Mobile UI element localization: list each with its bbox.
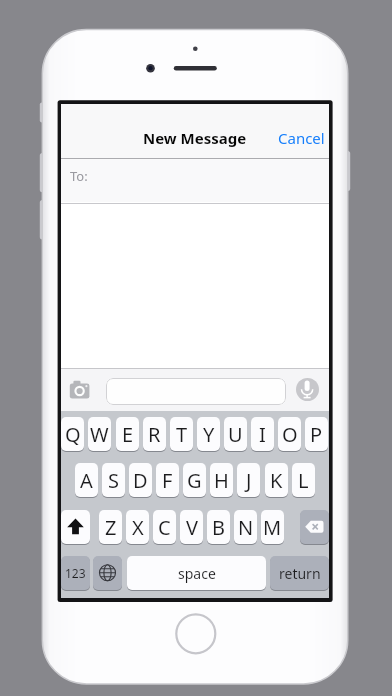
button[interactable]: L [292, 463, 315, 497]
button[interactable]: A [75, 463, 98, 497]
button[interactable]: R [143, 417, 166, 451]
button[interactable]: N [234, 510, 257, 544]
button[interactable]: M [261, 510, 284, 544]
button[interactable]: E [116, 417, 139, 451]
staticText: 123 [65, 565, 86, 581]
button[interactable]: Y [197, 417, 220, 451]
staticText: N [238, 514, 254, 541]
staticText: To: [70, 167, 88, 185]
button[interactable]: U [224, 417, 247, 451]
button[interactable]: J [237, 463, 260, 497]
staticText: K [270, 467, 283, 494]
button[interactable] [300, 510, 329, 544]
staticText: L [298, 467, 309, 494]
staticText: G [187, 467, 202, 494]
staticText: Z [105, 514, 117, 541]
staticText: W [90, 421, 109, 448]
button[interactable]: D [129, 463, 152, 497]
staticText: Q [65, 421, 81, 448]
staticText: U [228, 421, 243, 448]
staticText: J [246, 467, 252, 494]
button[interactable]: I [251, 417, 274, 451]
staticText: space [178, 564, 216, 583]
button[interactable]: To: [61, 159, 329, 202]
button[interactable]: V [180, 510, 203, 544]
staticText: T [176, 421, 188, 448]
staticText: R [148, 421, 161, 448]
button[interactable]: H [210, 463, 233, 497]
button[interactable] [93, 556, 122, 590]
staticText: A [80, 467, 93, 494]
staticText: S [108, 467, 119, 494]
button[interactable]: W [88, 417, 111, 451]
staticText: F [162, 467, 173, 494]
staticText: O [282, 421, 298, 448]
button[interactable]: X [126, 510, 149, 544]
staticText: D [133, 467, 148, 494]
button[interactable]: F [156, 463, 179, 497]
button[interactable]: S [102, 463, 125, 497]
button[interactable]: space [127, 556, 266, 590]
staticText: V [186, 514, 198, 541]
button[interactable]: Q [61, 417, 84, 451]
button[interactable] [61, 510, 90, 544]
button[interactable]: C [153, 510, 176, 544]
button[interactable]: Z [99, 510, 122, 544]
staticText: H [214, 467, 229, 494]
staticText: P [310, 421, 323, 448]
button[interactable] [296, 378, 319, 401]
staticText: New Message [143, 128, 247, 148]
staticText: E [122, 421, 134, 448]
button[interactable]: T [170, 417, 193, 451]
button[interactable] [106, 378, 286, 405]
button[interactable]: P [305, 417, 328, 451]
button[interactable] [67, 378, 93, 404]
staticText: B [212, 514, 225, 541]
button[interactable]: return [270, 556, 329, 590]
button[interactable]: Cancel [61, 121, 325, 155]
button[interactable]: O [278, 417, 301, 451]
staticText: Cancel [278, 128, 325, 148]
staticText: M [263, 514, 282, 541]
staticText: I [259, 421, 266, 448]
staticText: X [132, 514, 144, 541]
button[interactable]: 123 [61, 556, 90, 590]
button[interactable]: K [265, 463, 288, 497]
button[interactable]: G [183, 463, 206, 497]
staticText: return [279, 564, 321, 583]
staticText: C [158, 514, 171, 541]
staticText: Y [203, 421, 215, 448]
button[interactable]: B [207, 510, 230, 544]
